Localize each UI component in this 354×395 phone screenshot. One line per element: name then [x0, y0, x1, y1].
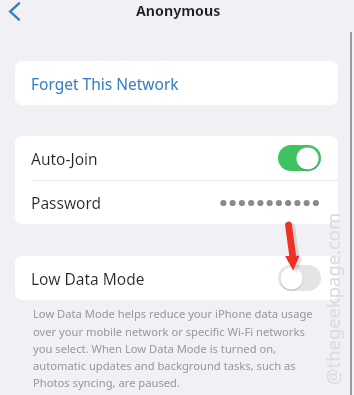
button[interactable]: Auto-Join	[15, 136, 338, 180]
button[interactable]: Back	[2, 0, 30, 26]
staticText: Low Data Mode helps reduce your iPhone d…	[33, 306, 313, 390]
staticText: Auto-Join	[31, 148, 98, 169]
button[interactable]: Password	[15, 181, 338, 224]
staticText: Anonymous	[136, 1, 221, 20]
staticText: Low Data Mode	[31, 268, 145, 289]
staticText: Password	[31, 192, 102, 213]
button[interactable]: Toggle on	[278, 145, 321, 171]
staticText: @thegeekpage.com	[320, 212, 345, 385]
button[interactable]: Toggle off	[278, 265, 321, 291]
button[interactable]: Forget This Network	[15, 61, 338, 105]
staticText: Forget This Network	[31, 73, 179, 94]
button[interactable]: Low Data Mode	[15, 256, 338, 300]
